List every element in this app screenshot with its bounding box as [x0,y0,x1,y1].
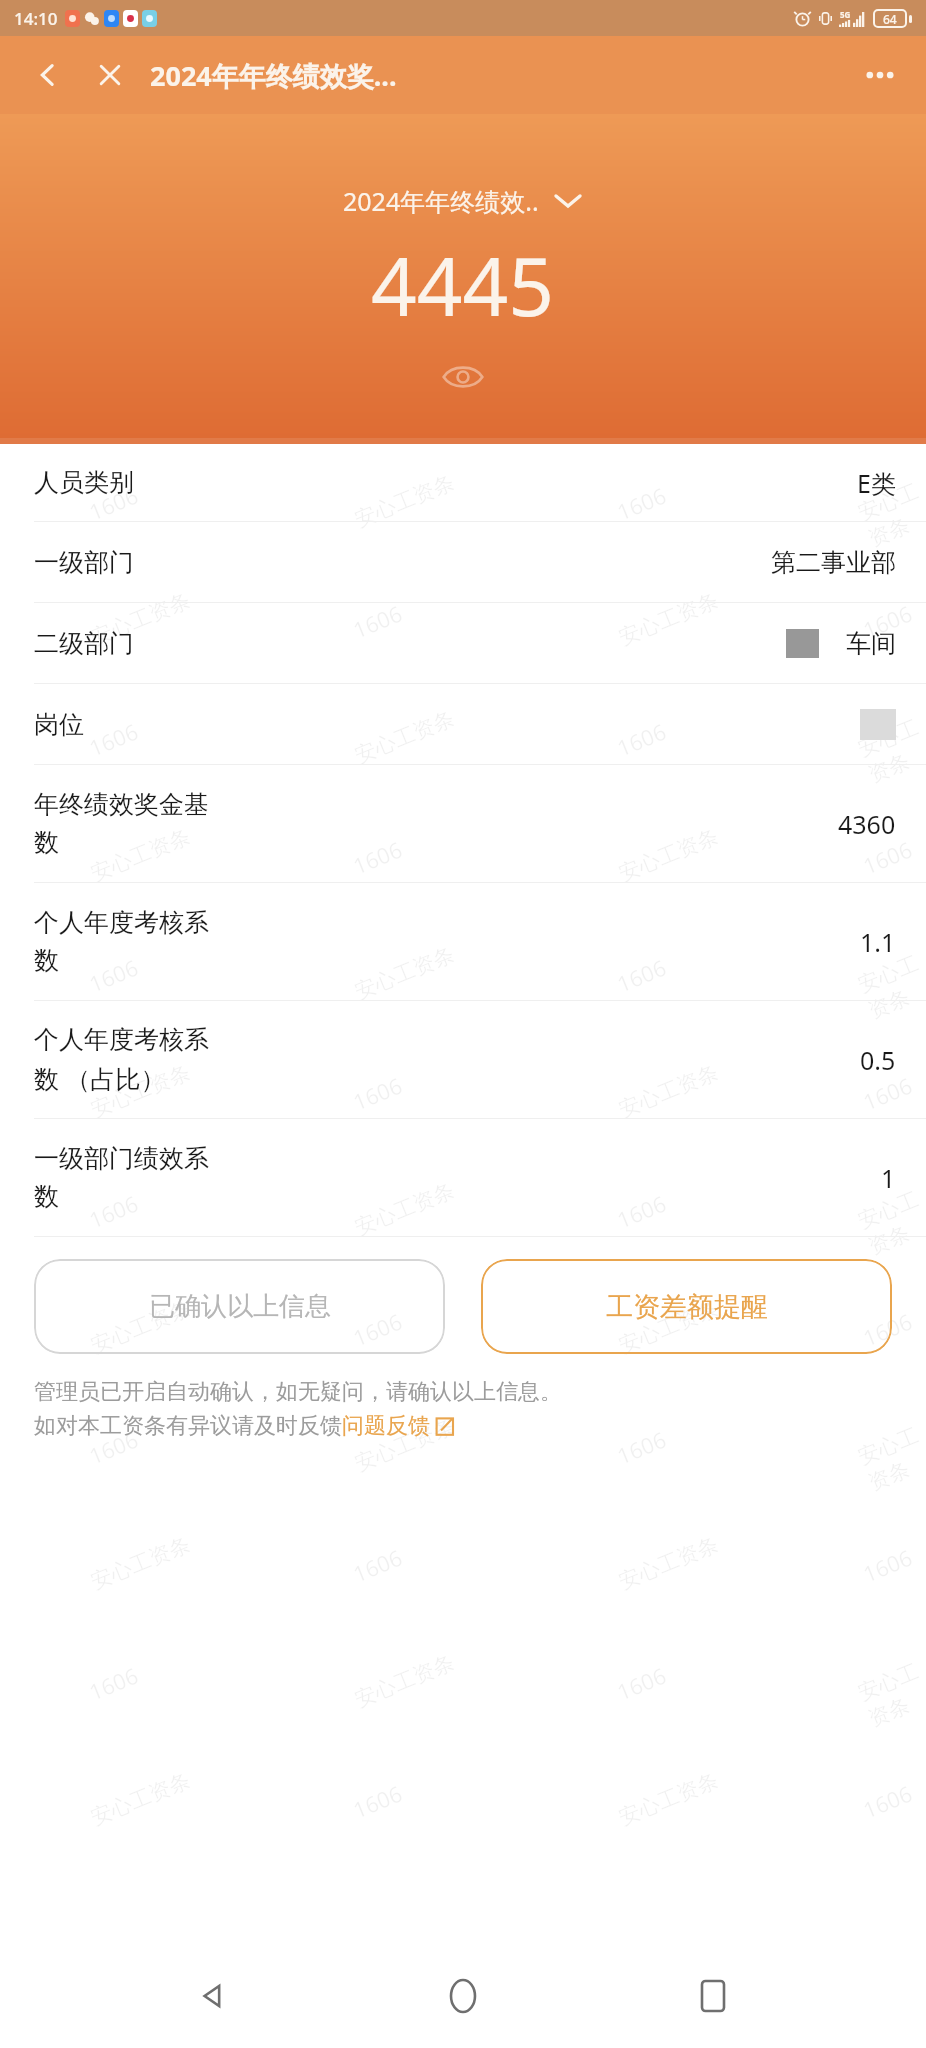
button[interactable]: Recent apps [676,1959,750,2033]
button[interactable]: 工资差额提醒 [481,1259,892,1354]
staticText: 个人年度考核系 数 [34,907,848,977]
staticText: 1606 [84,715,143,762]
staticText: 安心工资条 [854,1186,926,1260]
staticText: 管理员已开启自动确认，如无疑问，请确认以上信息。 [34,1378,562,1406]
staticText: 安心工资条 [87,1059,194,1123]
staticText: 安心工资条 [615,1295,722,1359]
staticText: 安心工资条 [854,1422,926,1496]
staticText: 1606 [348,833,407,880]
button[interactable]: 岗位 [0,684,926,765]
staticText: E类 [857,466,896,500]
button[interactable]: Toggle amount visibility [435,357,491,397]
button[interactable]: 已确认以上信息 [34,1259,445,1354]
staticText: 人员类别 [34,467,845,498]
staticText: 1606 [612,1187,671,1234]
staticText: 安心工资条 [854,714,926,788]
staticText: 安心工资条 [854,1658,926,1732]
staticText: 工资差额提醒 [606,1290,768,1324]
staticText: 安心工资条 [351,705,458,769]
staticText: 安心工资条 [615,823,722,887]
staticText: 4445 [371,230,555,339]
button[interactable]: 一级部门绩效系 数 [0,1119,926,1237]
staticText: 1606 [612,1423,671,1470]
staticText: 1606 [612,1659,671,1706]
staticText: 1606 [858,597,917,644]
staticText: 1606 [348,1777,407,1824]
staticText: 1606 [612,715,671,762]
staticText: 年终绩效奖金基 数 [34,789,826,859]
button[interactable]: 个人年度考核系 数 （占比） [0,1001,926,1119]
staticText: 2024年年终绩效奖... [150,57,397,94]
staticText: 1606 [858,1777,917,1824]
staticText: 安心工资条 [615,1059,722,1123]
staticText: 二级部门 [34,628,774,659]
staticText: 一级部门 [34,547,759,578]
staticText: 1.1 [860,925,896,959]
staticText: 1606 [84,951,143,998]
staticText: 安心工资条 [351,1177,458,1241]
staticText: 1606 [84,1187,143,1234]
button[interactable]: Home [426,1959,500,2033]
staticText: 第二事业部 [771,547,896,578]
staticText: 1606 [84,479,143,526]
button[interactable]: 2024年年终绩效.. [337,180,589,222]
staticText: 1606 [858,1069,917,1116]
staticText: 1606 [348,1541,407,1588]
staticText: 0.5 [860,1043,896,1077]
button[interactable]: Close [84,49,136,101]
button[interactable]: 二级部门 [0,603,926,684]
staticText: 64 [883,11,897,27]
button[interactable]: More options [854,49,906,101]
staticText: 问题反馈 [342,1412,430,1440]
staticText: 安心工资条 [351,941,458,1005]
staticText: 1606 [858,1541,917,1588]
staticText: 1606 [348,597,407,644]
staticText: 1606 [84,1659,143,1706]
staticText: 安心工资条 [854,478,926,552]
button[interactable]: 一级部门 [0,522,926,603]
staticText: 如对本工资条有异议请及时反馈 [34,1412,342,1440]
staticText: 安心工资条 [854,950,926,1024]
staticText: 2024年年终绩效.. [343,184,539,218]
staticText: 安心工资条 [87,1295,194,1359]
staticText: 车间 [846,628,896,659]
button[interactable]: 个人年度考核系 数 [0,883,926,1001]
staticText: 1606 [858,833,917,880]
staticText: 岗位 [34,709,848,740]
staticText: 一级部门绩效系 数 [34,1143,869,1213]
staticText: 安心工资条 [87,587,194,651]
staticText: 4360 [838,807,896,841]
staticText: 已确认以上信息 [149,1290,331,1323]
staticText: 1606 [348,1305,407,1352]
button[interactable]: 年终绩效奖金基 数 [0,765,926,883]
staticText: 个人年度考核系 数 （占比） [34,1024,848,1095]
button[interactable]: 问题反馈 [342,1412,455,1440]
staticText: 1606 [84,1423,143,1470]
staticText: 安心工资条 [351,1413,458,1477]
staticText: 14:10 [14,7,58,30]
staticText: 安心工资条 [87,823,194,887]
staticText: 1 [881,1161,896,1195]
staticText: 1606 [348,1069,407,1116]
button[interactable]: 人员类别 [0,444,926,522]
staticText: 安心工资条 [351,469,458,533]
staticText: 5G [840,9,851,20]
button[interactable]: Back [176,1959,250,2033]
staticText: 1606 [858,1305,917,1352]
staticText: 安心工资条 [615,587,722,651]
button[interactable]: Back [22,49,74,101]
staticText: 1606 [612,951,671,998]
staticText: 1606 [612,479,671,526]
